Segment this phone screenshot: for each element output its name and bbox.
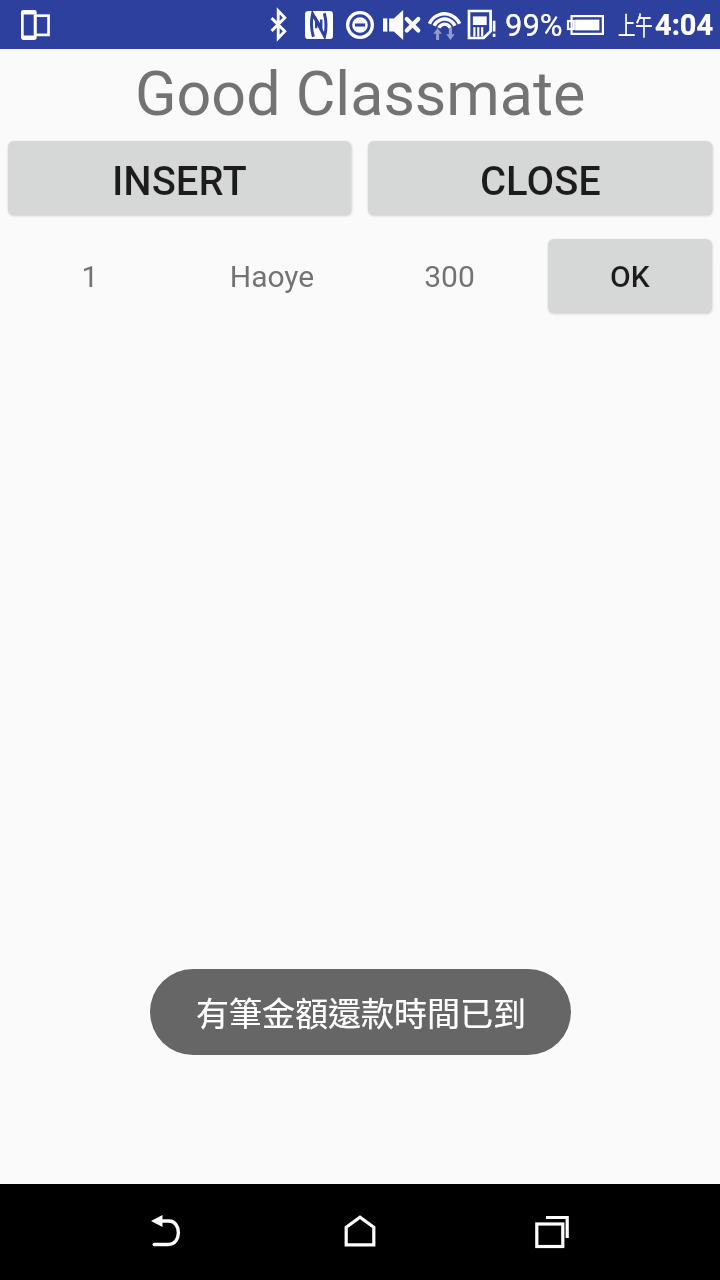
button[interactable]: Recent apps — [504, 1184, 600, 1280]
staticText: 4:04 — [655, 8, 714, 42]
staticText: INSERT — [112, 158, 247, 205]
button[interactable]: CLOSE — [368, 141, 712, 215]
staticText: CLOSE — [480, 158, 601, 205]
staticText: 300 — [364, 259, 535, 294]
button[interactable]: INSERT — [8, 141, 351, 215]
staticText: 有筆金額還款時間已到 — [196, 988, 526, 1036]
staticText: 99% — [505, 7, 563, 43]
staticText: 上午 — [618, 6, 653, 43]
staticText: OK — [610, 259, 650, 294]
staticText: Good Classmate — [135, 58, 586, 129]
staticText: 1 — [0, 259, 180, 294]
button[interactable]: OK — [548, 239, 712, 313]
button[interactable]: Home — [312, 1184, 408, 1280]
button[interactable]: Back — [120, 1184, 216, 1280]
staticText: Haoye — [180, 259, 364, 294]
